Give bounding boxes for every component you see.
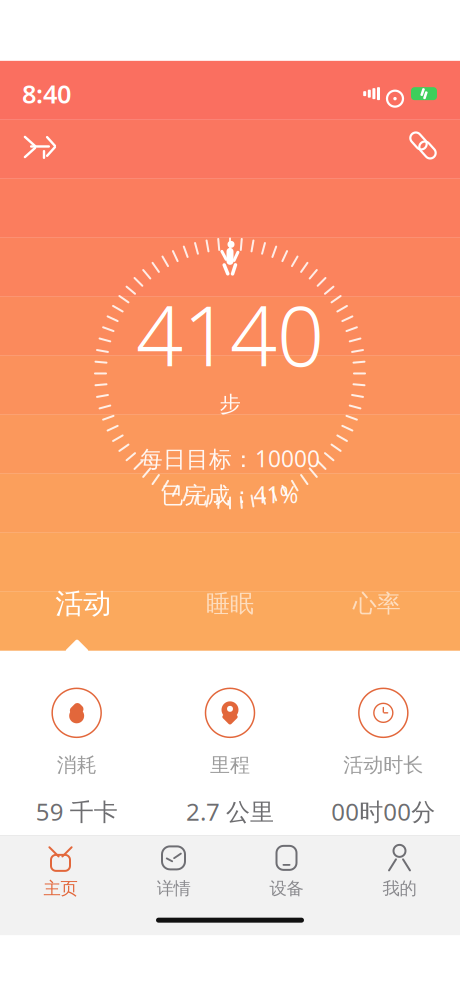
staticText: 睡眠 xyxy=(206,589,254,618)
button[interactable]: 活动 xyxy=(10,578,157,629)
staticText: 4140 xyxy=(136,279,324,389)
staticText: 活动 xyxy=(55,586,111,621)
staticText: 已完成：41% xyxy=(161,479,298,510)
staticText: 活动时长 xyxy=(343,753,423,777)
button[interactable]: 心率 xyxy=(303,581,450,626)
staticText: 8:40 xyxy=(22,77,71,110)
staticText: 步 xyxy=(219,391,240,417)
staticText: 每日目标：10000 xyxy=(140,443,320,473)
button[interactable]: 详情 xyxy=(117,836,230,905)
staticText: 主页 xyxy=(43,878,77,899)
staticText: 详情 xyxy=(156,878,190,899)
button[interactable]: Share xyxy=(14,122,68,168)
staticText: 里程 xyxy=(210,753,250,777)
button[interactable]: Link device xyxy=(400,124,446,166)
staticText: 消耗 xyxy=(57,753,97,777)
staticText: 00时00分 xyxy=(331,795,435,827)
staticText: 我的 xyxy=(382,878,416,899)
staticText: 59 千卡 xyxy=(36,795,118,827)
button[interactable]: 主页 xyxy=(4,836,117,905)
button[interactable]: 我的 xyxy=(343,836,456,905)
button[interactable]: 睡眠 xyxy=(157,581,303,626)
staticText: 2.7 公里 xyxy=(186,795,274,827)
button[interactable]: 设备 xyxy=(230,836,343,905)
staticText: 设备 xyxy=(269,878,303,899)
staticText: 心率 xyxy=(353,589,401,618)
